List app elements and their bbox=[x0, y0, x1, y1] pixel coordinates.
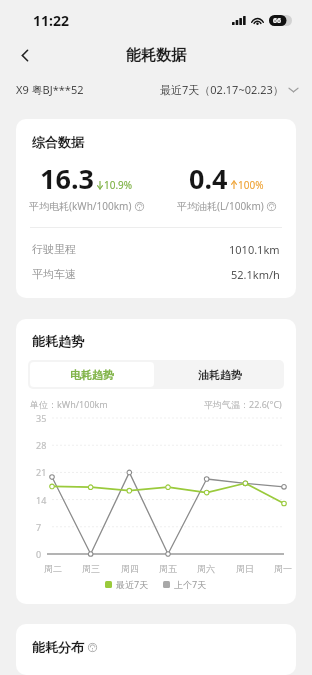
staticText: 平均车速 bbox=[32, 267, 76, 281]
staticText: 35 bbox=[36, 412, 47, 424]
staticText: 28 bbox=[36, 439, 47, 451]
staticText: 平均电耗(kWh/100km) bbox=[29, 199, 132, 213]
staticText: 能耗趋势 bbox=[32, 333, 84, 349]
staticText: 行驶里程 bbox=[32, 242, 76, 256]
staticText: 油耗趋势 bbox=[198, 368, 242, 382]
staticText: 能耗数据 bbox=[126, 46, 186, 65]
staticText: 16.3 bbox=[40, 160, 94, 197]
staticText: X9 粤BJ***52 bbox=[16, 82, 84, 97]
staticText: 综合数据 bbox=[32, 134, 84, 150]
staticText: 单位：kWh/100km bbox=[30, 398, 108, 410]
staticText: 周三 bbox=[82, 563, 100, 574]
staticText: 52.1km/h bbox=[231, 267, 280, 282]
staticText: 平均油耗(L/100km) bbox=[177, 199, 264, 213]
staticText: 7 bbox=[36, 521, 42, 533]
staticText: 1010.1km bbox=[229, 242, 280, 257]
staticText: 100% bbox=[238, 178, 264, 192]
staticText: 上个7天 bbox=[174, 578, 207, 590]
staticText: 周日 bbox=[236, 563, 254, 574]
staticText: 周六 bbox=[197, 563, 215, 574]
staticText: 周四 bbox=[121, 563, 139, 574]
button[interactable]: 油耗趋势 bbox=[156, 360, 284, 389]
button[interactable]: Back bbox=[8, 40, 42, 70]
staticText: 最近7天 bbox=[116, 578, 149, 590]
staticText: 电耗趋势 bbox=[70, 368, 114, 382]
staticText: 14 bbox=[36, 494, 47, 506]
staticText: 21 bbox=[36, 466, 47, 478]
staticText: 0.4 bbox=[189, 160, 228, 197]
button[interactable]: X9 粤BJ***52 bbox=[16, 78, 84, 101]
staticText: 周二 bbox=[44, 563, 62, 574]
button[interactable]: 电耗趋势 bbox=[30, 362, 154, 387]
staticText: 11:22 bbox=[33, 11, 69, 30]
staticText: 平均气温：22.6(°C) bbox=[204, 398, 282, 410]
staticText: 最近7天（02.17~02.23） bbox=[160, 82, 284, 97]
button[interactable]: 能耗分布 bbox=[16, 624, 296, 675]
staticText: 周一 bbox=[274, 563, 292, 574]
staticText: 66 bbox=[273, 16, 282, 26]
staticText: 能耗分布 bbox=[32, 639, 84, 655]
button[interactable]: 最近7天（02.17~02.23） bbox=[160, 78, 298, 101]
staticText: 10.9% bbox=[104, 178, 133, 192]
staticText: 周五 bbox=[159, 563, 177, 574]
staticText: 0 bbox=[36, 548, 42, 560]
